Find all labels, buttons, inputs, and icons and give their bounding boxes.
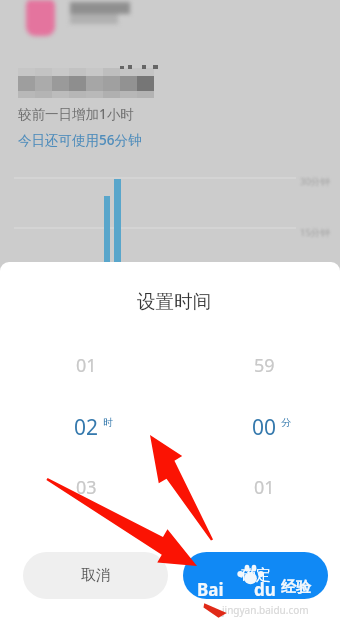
button[interactable]: 00 [202, 394, 327, 456]
staticText: jingyan.baidu.com [222, 603, 309, 617]
staticText: 15分钟 [300, 226, 330, 239]
staticText: 00 [252, 413, 277, 442]
button[interactable]: 取消 [23, 552, 168, 599]
staticText: 分 [281, 416, 291, 429]
button[interactable]: 01 [24, 336, 149, 394]
staticText: 03 [76, 475, 97, 500]
button[interactable]: 59 [202, 336, 327, 394]
staticText: 较前一日增加1小时 [18, 105, 134, 123]
button[interactable]: 01 [202, 456, 327, 518]
staticText: 02 [74, 413, 99, 442]
staticText: 59 [254, 353, 275, 378]
staticText: 确定 [241, 566, 271, 585]
button[interactable]: 02 [24, 394, 149, 456]
staticText: 01 [76, 353, 97, 378]
staticText: du [254, 578, 276, 601]
staticText: 取消 [81, 566, 111, 585]
staticText: 30分钟 [300, 175, 330, 188]
staticText: 设置时间 [4, 290, 340, 313]
button[interactable]: 确定 [183, 552, 328, 599]
button[interactable]: 03 [24, 456, 149, 518]
staticText: Bai [197, 578, 224, 601]
staticText: 今日还可使用56分钟 [18, 131, 142, 149]
staticText: 时 [103, 416, 113, 429]
staticText: 经验 [281, 578, 311, 597]
staticText: 01 [254, 475, 275, 500]
